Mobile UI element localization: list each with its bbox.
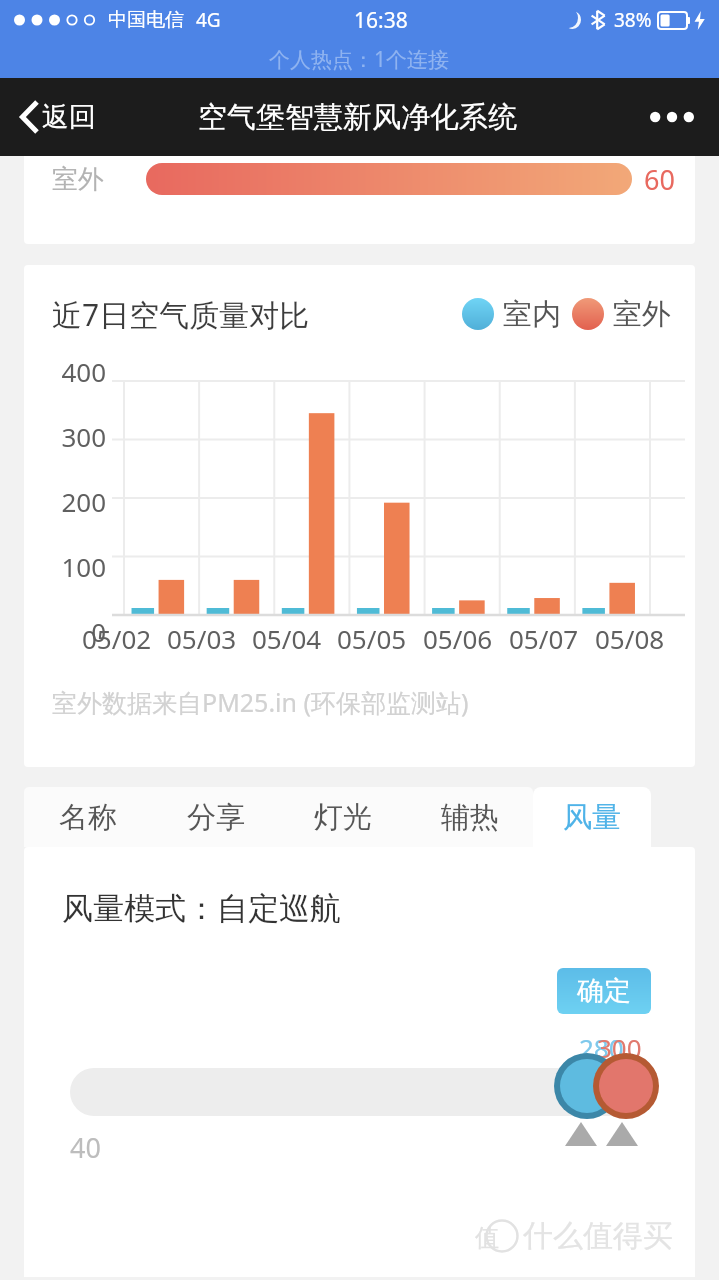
staticText: 风量模式：自定巡航: [62, 889, 341, 928]
staticText: 300: [597, 1030, 642, 1065]
staticText: 4G: [196, 7, 221, 33]
button[interactable]: [70, 1068, 650, 1116]
staticText: 返回: [42, 100, 96, 134]
staticText: 值: [475, 1223, 499, 1253]
staticText: 个人热点：1个连接: [269, 45, 450, 74]
button[interactable]: 风量: [533, 787, 651, 847]
staticText: 300: [44, 419, 106, 454]
staticText: 05/08: [595, 621, 665, 656]
button[interactable]: 辅热: [406, 787, 533, 847]
staticText: 0: [44, 614, 106, 649]
staticText: 灯光: [314, 799, 372, 836]
staticText: 16:38: [354, 6, 408, 35]
staticText: 400: [44, 354, 106, 389]
staticText: 空气堡智慧新风净化系统: [198, 99, 517, 136]
staticText: 风量: [563, 799, 621, 836]
staticText: 100: [44, 549, 106, 584]
staticText: 05/02: [82, 621, 152, 656]
staticText: 室外数据来自PM25.in (环保部监测站): [52, 685, 469, 719]
staticText: 05/03: [167, 621, 237, 656]
staticText: 200: [44, 484, 106, 519]
button[interactable]: More options: [639, 101, 705, 133]
staticText: 确定: [577, 974, 631, 1008]
staticText: 名称: [59, 799, 117, 836]
staticText: 38%: [614, 7, 652, 33]
staticText: 280: [579, 1030, 624, 1065]
staticText: 05/04: [252, 621, 322, 656]
staticText: 室内: [503, 296, 561, 333]
staticText: 05/06: [423, 621, 493, 656]
button[interactable]: 名称: [24, 787, 152, 847]
button[interactable]: 返回: [14, 92, 102, 142]
staticText: 室外: [52, 163, 104, 196]
staticText: 60: [644, 161, 675, 198]
staticText: 近7日空气质量对比: [52, 294, 310, 335]
staticText: 40: [70, 1129, 101, 1166]
staticText: 05/07: [509, 621, 579, 656]
button[interactable]: 灯光: [279, 787, 406, 847]
button[interactable]: 分享: [152, 787, 279, 847]
staticText: 什么值得买: [523, 1217, 673, 1255]
staticText: 室外: [613, 296, 671, 333]
staticText: 05/05: [337, 621, 407, 656]
staticText: 中国电信: [108, 8, 184, 32]
staticText: 辅热: [441, 799, 499, 836]
button[interactable]: 确定: [557, 968, 651, 1014]
staticText: 分享: [187, 799, 245, 836]
